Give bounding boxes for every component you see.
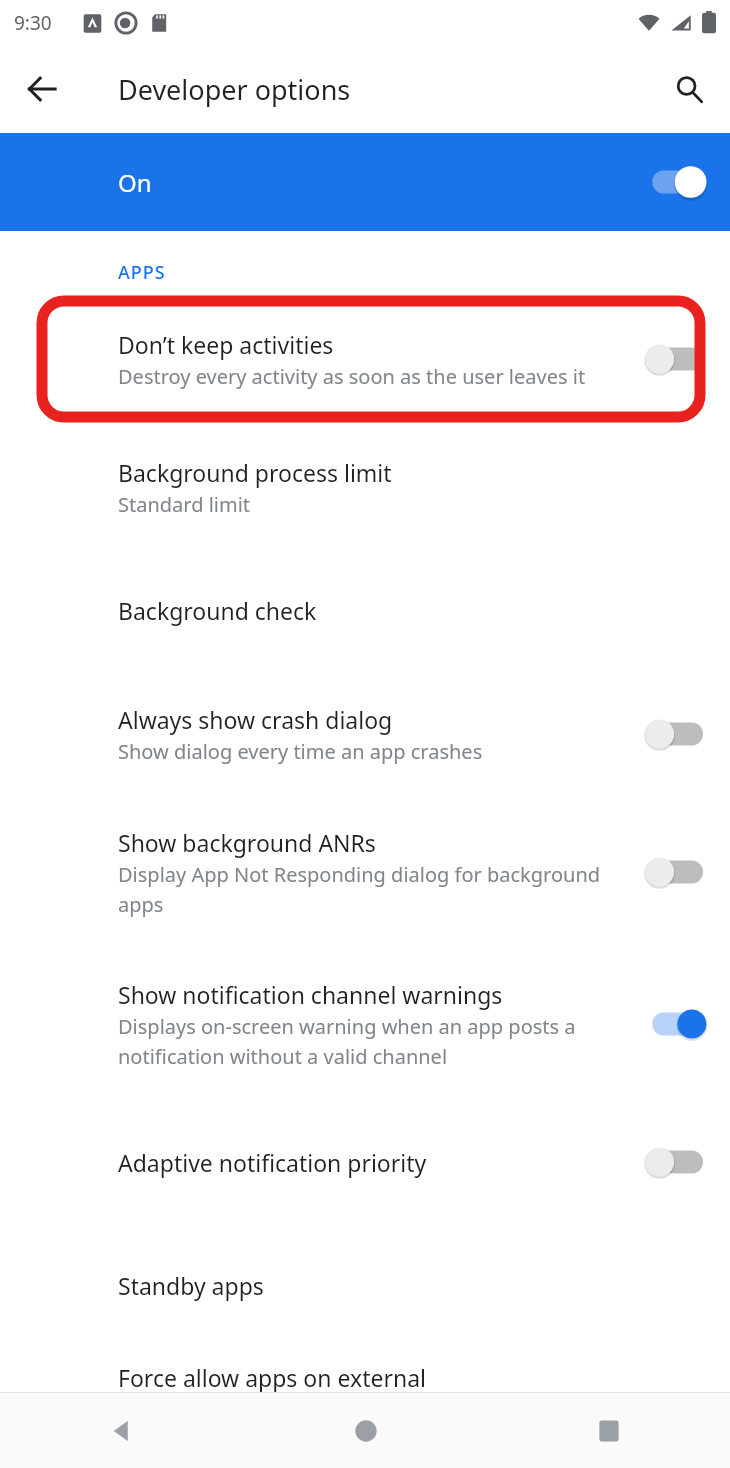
button[interactable]: On	[0, 133, 730, 231]
button[interactable]: Background check	[0, 549, 730, 672]
staticText: Destroy every activity as soon as the us…	[118, 363, 586, 390]
staticText: Standard limit	[118, 491, 251, 518]
button[interactable]: Show notification channel warnings	[0, 948, 730, 1100]
button[interactable]: Search	[659, 59, 719, 119]
staticText: Show background ANRs	[118, 827, 376, 858]
staticText: 9:30	[14, 10, 52, 36]
button[interactable]: Always show crash dialog	[0, 672, 730, 796]
staticText: Standby apps	[118, 1270, 264, 1301]
staticText: Displays on-screen warning when an app p…	[118, 1013, 638, 1070]
button[interactable]: Home	[244, 1393, 487, 1468]
button[interactable]: Back	[12, 59, 72, 119]
button[interactable]: Recent apps	[487, 1393, 730, 1468]
button[interactable]: Force allow apps on external	[0, 1347, 730, 1468]
staticText: Show dialog every time an app crashes	[118, 738, 483, 765]
button[interactable]: Show background ANRs	[0, 796, 730, 948]
button[interactable]: Background process limit	[0, 425, 730, 549]
staticText: Always show crash dialog	[118, 704, 393, 735]
staticText: Don’t keep activities	[118, 329, 334, 360]
button[interactable]: Back	[0, 1393, 244, 1468]
staticText: Developer options	[118, 71, 351, 108]
button[interactable]: Don’t keep activities	[0, 293, 730, 425]
staticText: Force allow apps on external	[118, 1362, 426, 1393]
staticText: APPS	[118, 260, 166, 285]
staticText: On	[118, 166, 152, 199]
button[interactable]: Standby apps	[0, 1224, 730, 1347]
staticText: Adaptive notification priority	[118, 1147, 427, 1178]
staticText: Show notification channel warnings	[118, 979, 503, 1010]
staticText: Makes any app eligible to be written to …	[118, 1396, 638, 1453]
staticText: Display App Not Responding dialog for ba…	[118, 861, 638, 918]
button[interactable]: Adaptive notification priority	[0, 1100, 730, 1224]
staticText: Background check	[118, 595, 317, 626]
staticText: Background process limit	[118, 457, 392, 488]
